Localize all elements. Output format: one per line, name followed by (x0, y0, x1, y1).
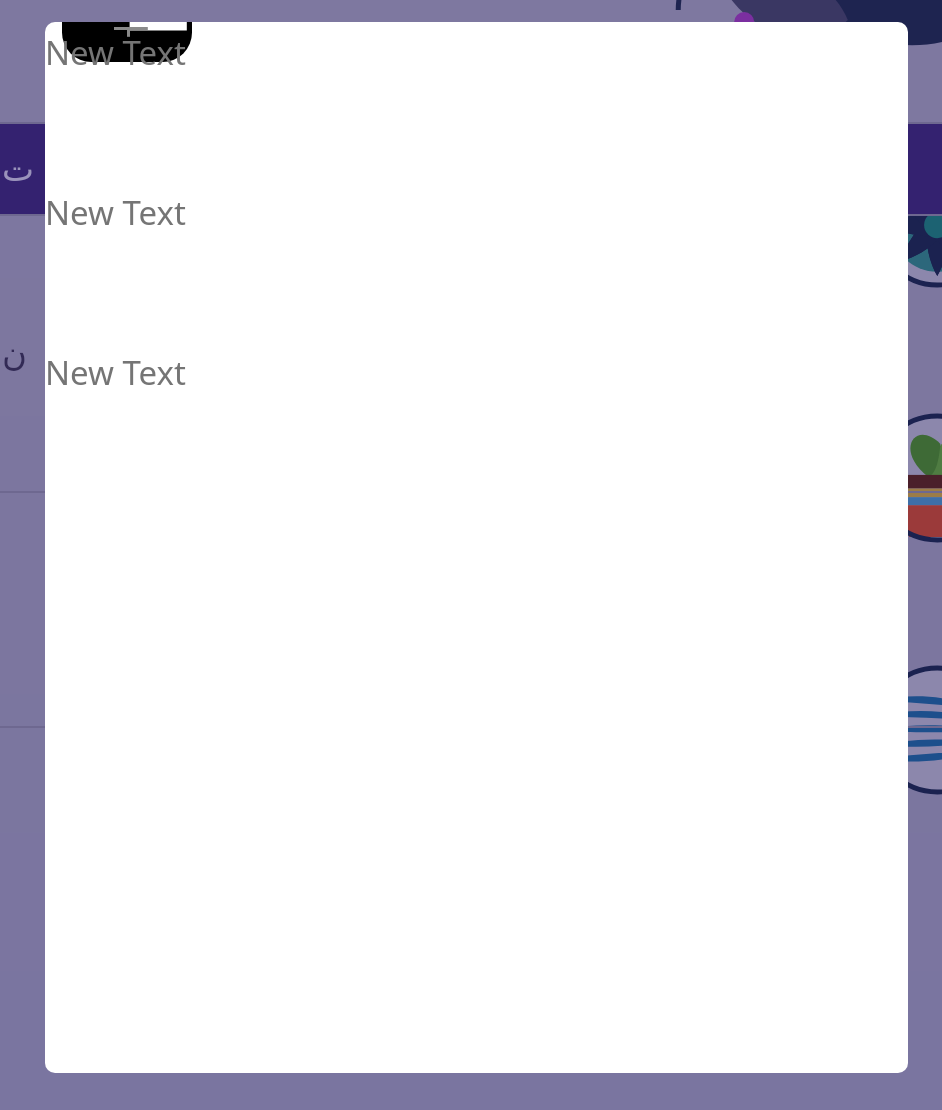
button[interactable]: ن (0, 216, 942, 491)
staticText: ن (2, 334, 27, 374)
button[interactable] (0, 728, 942, 1110)
button[interactable] (0, 0, 942, 122)
other: Image thumbnail (62, 22, 192, 62)
button[interactable]: New Text (45, 30, 908, 73)
button[interactable]: ت (0, 124, 942, 214)
staticText: ت (2, 149, 35, 189)
staticText: New Text (45, 350, 186, 393)
staticText: New Text (45, 190, 186, 233)
button[interactable]: New Text (45, 350, 908, 393)
button[interactable] (0, 493, 942, 726)
staticText: New Text (45, 30, 186, 73)
button[interactable]: New Text (45, 190, 908, 233)
